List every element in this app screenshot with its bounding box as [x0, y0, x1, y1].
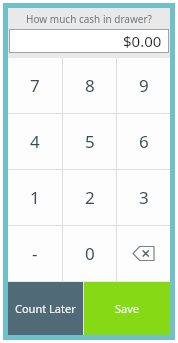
button[interactable]: 0 — [63, 226, 116, 281]
button[interactable]: - — [8, 226, 62, 281]
button[interactable]: 3 — [117, 170, 170, 225]
staticText: 1 — [30, 186, 40, 209]
staticText: 3 — [139, 186, 149, 209]
staticText: 5 — [85, 130, 95, 153]
staticText: 6 — [139, 130, 149, 153]
button[interactable]: 8 — [63, 58, 116, 113]
button[interactable]: Count Later — [8, 282, 83, 335]
staticText: - — [32, 242, 38, 265]
button[interactable]: 9 — [117, 58, 170, 113]
staticText: How much cash in drawer? — [26, 12, 152, 26]
staticText: 0 — [85, 242, 95, 265]
button[interactable]: $0.00 — [9, 29, 169, 53]
button[interactable]: 4 — [8, 114, 62, 169]
staticText: Save — [115, 301, 140, 316]
staticText: $0.00 — [123, 31, 162, 51]
staticText: Count Later — [15, 301, 76, 316]
button[interactable]: Backspace — [117, 226, 170, 281]
staticText: 4 — [30, 130, 40, 153]
button[interactable]: 5 — [63, 114, 116, 169]
staticText: 2 — [85, 186, 95, 209]
staticText: 7 — [30, 74, 40, 97]
button[interactable]: 1 — [8, 170, 62, 225]
staticText: 8 — [85, 74, 95, 97]
button[interactable]: Save — [84, 282, 170, 335]
button[interactable]: 2 — [63, 170, 116, 225]
button[interactable]: 7 — [8, 58, 62, 113]
button[interactable]: 6 — [117, 114, 170, 169]
staticText: 9 — [139, 74, 149, 97]
